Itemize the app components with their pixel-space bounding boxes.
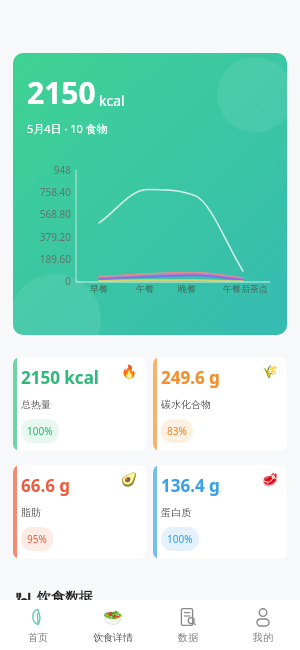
staticText: 晚餐 — [178, 283, 196, 294]
staticText: 948 — [53, 163, 71, 177]
staticText: 568.80 — [39, 207, 71, 221]
staticText: 249.6 g — [161, 366, 220, 389]
staticText: 🥑 — [121, 472, 138, 487]
button[interactable]: 🔥 — [13, 357, 146, 451]
staticText: 脂肪 — [21, 506, 41, 519]
staticText: 758.40 — [39, 185, 71, 199]
staticText: 碳水化合物 — [161, 398, 211, 411]
staticText: 2150 kcal — [21, 366, 99, 389]
staticText: 早餐 — [90, 283, 108, 294]
staticText: 136.4 g — [161, 474, 220, 497]
staticText: 我的 — [253, 631, 273, 644]
staticText: 数据 — [178, 631, 198, 644]
button[interactable]: 首页 — [0, 600, 75, 650]
staticText: 100% — [167, 532, 193, 546]
staticText: 95% — [27, 532, 47, 546]
staticText: 饮食数据 — [37, 589, 93, 607]
staticText: 5月4日 · 10 食物 — [27, 121, 108, 136]
button[interactable]: 🌾 — [153, 357, 287, 451]
button[interactable]: 2150 — [13, 53, 287, 335]
staticText: 饮食详情 — [93, 631, 133, 644]
staticText: 189.60 — [39, 252, 71, 266]
staticText: 🔥 — [121, 364, 138, 379]
staticText: 总热量 — [21, 398, 51, 411]
staticText: 🥩 — [262, 472, 279, 487]
staticText: 首页 — [28, 631, 48, 644]
button[interactable]: 🥩 — [153, 465, 287, 559]
button[interactable]: 🥑 — [13, 465, 146, 559]
staticText: 午餐 — [136, 283, 154, 294]
staticText: 66.6 g — [21, 474, 71, 497]
staticText: 🥗 — [103, 608, 123, 627]
staticText: 午餐后茶点 — [223, 283, 268, 294]
staticText: 蛋白质 — [161, 506, 191, 519]
staticText: 🌾 — [262, 364, 279, 379]
button[interactable]: 我的 — [225, 600, 300, 650]
button[interactable]: 🥗 — [75, 600, 150, 650]
button[interactable]: 数据 — [150, 600, 225, 650]
staticText: 100% — [27, 424, 53, 438]
staticText: 379.20 — [39, 230, 71, 244]
staticText: 0 — [65, 274, 71, 288]
staticText: 83% — [167, 424, 187, 438]
staticText: 2150 — [27, 72, 96, 113]
staticText: kcal — [99, 91, 125, 110]
